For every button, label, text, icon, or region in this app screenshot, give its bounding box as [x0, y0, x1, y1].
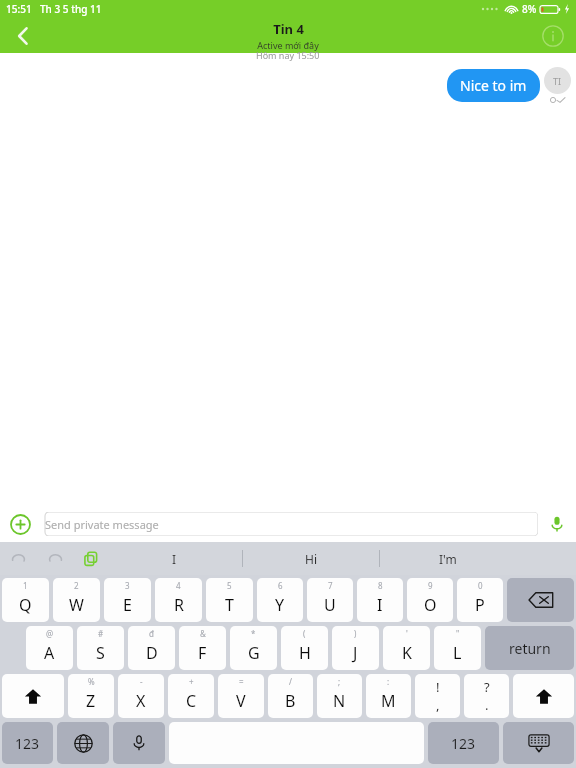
staticText: Active mới đây	[257, 39, 319, 51]
button[interactable]: &	[179, 626, 226, 670]
staticText: G	[248, 642, 260, 664]
button[interactable]: ?	[464, 674, 509, 718]
button[interactable]: đ	[128, 626, 175, 670]
button[interactable]: 4	[155, 578, 202, 622]
staticText: L	[453, 642, 462, 664]
button[interactable]: Hide keyboard	[503, 722, 574, 764]
staticText: 0	[478, 580, 483, 591]
button[interactable]: /	[268, 674, 313, 718]
button[interactable]: Paste	[74, 542, 107, 575]
staticText: :	[387, 676, 390, 687]
staticText: M	[381, 690, 396, 712]
button[interactable]: 1	[2, 578, 49, 622]
button[interactable]: !	[415, 674, 460, 718]
button[interactable]: Nice to im	[447, 69, 540, 102]
button[interactable]: +	[168, 674, 214, 718]
staticText: 8%	[522, 2, 537, 16]
staticText: return	[509, 639, 551, 658]
button[interactable]: 3	[104, 578, 151, 622]
staticText: Hôm nay 15:50	[256, 49, 320, 61]
button[interactable]: :	[366, 674, 411, 718]
staticText: 123	[15, 734, 40, 753]
staticText: !	[436, 678, 440, 696]
staticText: +	[189, 676, 194, 687]
staticText: Th 3 5 thg 11	[40, 2, 102, 16]
button[interactable]: Send private message	[38, 512, 538, 536]
button[interactable]: Add attachment	[7, 511, 33, 537]
button[interactable]: Tin 4	[257, 20, 319, 51]
button[interactable]: Shift	[2, 674, 64, 718]
staticText: 3	[125, 580, 130, 591]
staticText: 15:51	[6, 2, 32, 16]
staticText: /	[289, 676, 292, 687]
staticText: R	[174, 594, 184, 616]
staticText: E	[123, 594, 132, 616]
button[interactable]: I	[107, 542, 242, 575]
staticText: H	[299, 642, 311, 664]
button[interactable]: 6	[257, 578, 303, 622]
button[interactable]: 5	[206, 578, 253, 622]
staticText: TI	[553, 75, 562, 87]
button[interactable]: @	[26, 626, 73, 670]
button[interactable]: 9	[407, 578, 453, 622]
staticText: ;	[338, 676, 341, 687]
staticText: Send private message	[45, 517, 159, 532]
button[interactable]: Shift	[513, 674, 574, 718]
staticText: Q	[19, 594, 32, 616]
button[interactable]: 2	[53, 578, 100, 622]
staticText: 4	[176, 580, 181, 591]
staticText: 9	[428, 580, 433, 591]
button[interactable]: Backspace	[507, 578, 574, 622]
staticText: @	[46, 628, 54, 639]
button[interactable]: )	[332, 626, 379, 670]
button[interactable]: Hi	[243, 542, 379, 575]
button[interactable]: Redo	[37, 542, 74, 575]
staticText: Hi	[305, 551, 317, 567]
staticText: V	[236, 690, 246, 712]
button[interactable]: '	[383, 626, 430, 670]
button[interactable]: return	[485, 626, 574, 670]
button[interactable]: ;	[317, 674, 362, 718]
button[interactable]: I'm	[380, 542, 516, 575]
button[interactable]: 7	[307, 578, 353, 622]
staticText: K	[402, 642, 412, 664]
button[interactable]: *	[230, 626, 277, 670]
button[interactable]: %	[68, 674, 114, 718]
button[interactable]: Voice message	[545, 512, 569, 536]
button[interactable]: Dictation	[113, 722, 165, 764]
button[interactable]: 0	[457, 578, 503, 622]
button[interactable]: 8	[357, 578, 403, 622]
staticText: N	[333, 690, 346, 712]
button[interactable]: TI	[544, 67, 571, 94]
staticText: I	[172, 551, 177, 567]
staticText: ,	[436, 696, 440, 714]
button[interactable]: -	[118, 674, 164, 718]
staticText: O	[424, 594, 437, 616]
button[interactable]: =	[218, 674, 264, 718]
button[interactable]: Change keyboard	[57, 722, 109, 764]
button[interactable]: Undo	[0, 542, 37, 575]
staticText: 8	[378, 580, 383, 591]
staticText: )	[354, 628, 357, 639]
staticText: 7	[328, 580, 333, 591]
staticText: =	[239, 676, 244, 687]
staticText: đ	[149, 628, 154, 639]
button[interactable]: Details	[530, 18, 576, 53]
staticText: %	[88, 676, 95, 687]
button[interactable]: #	[77, 626, 124, 670]
button[interactable]: (	[281, 626, 328, 670]
staticText: I	[377, 594, 383, 616]
button[interactable]: 123	[2, 722, 53, 764]
staticText: Tin 4	[273, 20, 304, 38]
button[interactable]: 123	[428, 722, 499, 764]
staticText: W	[69, 594, 84, 616]
button[interactable]: "	[434, 626, 481, 670]
staticText: #	[98, 628, 104, 639]
staticText: 6	[278, 580, 283, 591]
button[interactable]: Back	[0, 18, 46, 53]
staticText: Nice to im	[460, 76, 527, 95]
staticText: -	[140, 676, 143, 687]
staticText: C	[186, 690, 197, 712]
staticText: X	[136, 690, 146, 712]
